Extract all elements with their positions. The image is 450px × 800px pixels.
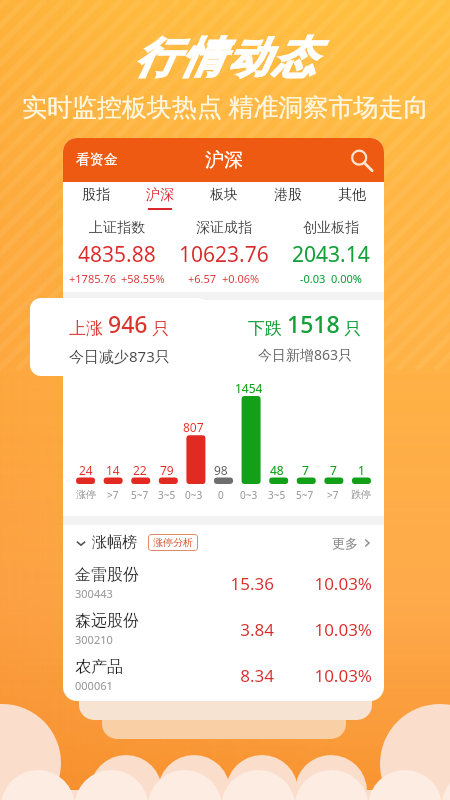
staticText: 2043.14 [292, 240, 370, 269]
button[interactable]: 其他 [320, 182, 384, 212]
staticText: 0.00% [331, 271, 362, 286]
staticText: 4835.88 [78, 240, 156, 269]
staticText: 更多 [332, 535, 358, 551]
staticText: 其他 [338, 186, 366, 204]
button[interactable]: 沪深 [128, 182, 192, 212]
staticText: 300210 [75, 632, 113, 647]
staticText: +58.55% [121, 271, 165, 286]
staticText: 港股 [274, 186, 302, 204]
staticText: 金雷股份 [75, 565, 139, 585]
staticText: 000061 [75, 678, 113, 693]
button[interactable]: 创业板指 [277, 212, 384, 292]
staticText: 涨停 [76, 488, 96, 501]
staticText: -0.03 [300, 271, 326, 286]
staticText: 深证成指 [196, 219, 252, 237]
staticText: 946 [108, 308, 148, 339]
staticText: 1 [358, 462, 365, 478]
staticText: 板块 [210, 186, 238, 204]
button[interactable]: 上证指数 [63, 212, 170, 292]
staticText: 上证指数 [89, 219, 145, 237]
staticText: 农产品 [75, 657, 123, 677]
staticText: 涨停分析 [153, 536, 193, 549]
staticText: 3~5 [268, 488, 286, 502]
staticText: 3.84 [210, 618, 274, 641]
staticText: 股指 [82, 186, 110, 204]
staticText: 7 [302, 462, 309, 478]
staticText: 300443 [75, 586, 113, 601]
staticText: 3~5 [158, 488, 176, 502]
button[interactable]: 看资金 [63, 151, 118, 169]
staticText: +6.57 [188, 271, 217, 286]
staticText: 今日减少873只 [69, 346, 170, 366]
button[interactable]: 板块 [192, 182, 256, 212]
staticText: 24 [79, 462, 93, 478]
button[interactable]: 港股 [256, 182, 320, 212]
staticText: 森远股份 [75, 611, 139, 631]
staticText: 跌停 [351, 488, 371, 501]
staticText: 7 [330, 462, 337, 478]
button[interactable]: 金雷股份 [63, 560, 384, 606]
staticText: 22 [133, 462, 147, 478]
staticText: 0~3 [185, 488, 203, 502]
staticText: 沪深 [146, 186, 174, 204]
staticText: 行情动态 [133, 32, 317, 85]
button[interactable]: 下跌 [248, 308, 362, 364]
button[interactable]: 上涨 [30, 298, 208, 376]
button[interactable]: 农产品 [63, 652, 384, 698]
staticText: 10.03% [274, 618, 372, 641]
staticText: 807 [183, 419, 204, 435]
staticText: 实时监控板块热点 精准洞察市场走向 [22, 89, 429, 123]
staticText: 0 [218, 488, 224, 502]
staticText: 1454 [235, 380, 263, 396]
button[interactable]: 更多 [332, 535, 372, 551]
button[interactable]: Search [348, 147, 374, 173]
staticText: +0.06% [222, 271, 260, 286]
staticText: >7 [107, 488, 119, 502]
button[interactable]: 森远股份 [63, 606, 384, 652]
staticText: 上涨 [69, 316, 108, 339]
staticText: 只 [340, 316, 362, 339]
staticText: >7 [327, 488, 339, 502]
staticText: 创业板指 [303, 219, 359, 237]
staticText: 沪深 [205, 148, 243, 172]
button[interactable]: 深证成指 [170, 212, 277, 292]
staticText: 10.03% [274, 572, 372, 595]
staticText: 10.03% [274, 664, 372, 687]
staticText: 0~3 [240, 488, 258, 502]
button[interactable]: 涨幅榜 [75, 533, 137, 552]
staticText: 5~7 [131, 488, 149, 502]
staticText: 下跌 [248, 316, 287, 339]
staticText: 只 [148, 316, 170, 339]
staticText: 98 [214, 462, 228, 478]
staticText: 5~7 [296, 488, 314, 502]
staticText: 10623.76 [179, 240, 269, 269]
staticText: 8.34 [210, 664, 274, 687]
staticText: 1518 [287, 308, 340, 339]
staticText: 48 [270, 462, 284, 478]
staticText: 79 [160, 462, 174, 478]
button[interactable]: 股指 [63, 182, 128, 212]
staticText: +1785.76 [69, 271, 116, 286]
staticText: 15.36 [210, 572, 274, 595]
staticText: 涨幅榜 [92, 533, 137, 552]
button[interactable]: 涨停分析 [148, 534, 198, 551]
staticText: 14 [106, 462, 120, 478]
staticText: 今日新增863只 [258, 345, 353, 364]
